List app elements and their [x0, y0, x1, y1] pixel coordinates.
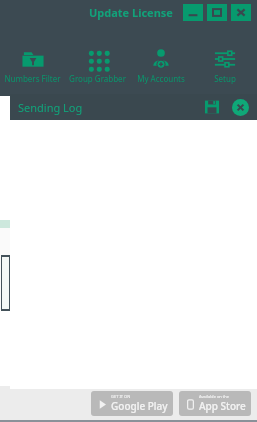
- button[interactable]: Get it on Google Play: [91, 391, 173, 416]
- staticText: Update License: [89, 5, 173, 20]
- staticText: Group Grabber: [69, 73, 126, 84]
- staticText: Sending Log: [18, 100, 83, 115]
- button[interactable]: Group Grabber: [65, 46, 129, 84]
- button[interactable]: Save log: [202, 97, 222, 117]
- staticText: Available on the: [199, 394, 230, 399]
- staticText: GET IT ON: [111, 394, 131, 399]
- button[interactable]: Maximize: [207, 4, 227, 21]
- button[interactable]: Numbers Filter: [0, 46, 65, 84]
- staticText: Setup: [214, 73, 236, 84]
- button[interactable]: Available on the App Store: [179, 391, 251, 416]
- button[interactable]: Close: [230, 97, 250, 117]
- staticText: Numbers Filter: [4, 73, 61, 84]
- staticText: My Accounts: [137, 73, 185, 84]
- button[interactable]: Minimize: [183, 4, 203, 21]
- button[interactable]: Update License: [89, 5, 173, 20]
- button[interactable]: Close: [231, 4, 251, 21]
- staticText: App Store: [199, 399, 246, 413]
- button[interactable]: Setup: [193, 46, 257, 84]
- staticText: Google Play: [111, 399, 168, 413]
- button[interactable]: My Accounts: [129, 46, 193, 84]
